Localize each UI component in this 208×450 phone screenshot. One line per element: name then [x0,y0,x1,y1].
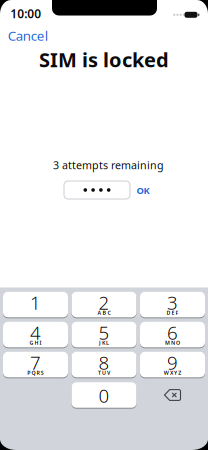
staticText: E [171,309,174,316]
staticText: Z [178,369,181,376]
staticText: U [102,369,106,376]
staticText: Cancel [8,27,48,44]
staticText: C [108,309,111,316]
button[interactable]: 4 [3,322,68,347]
staticText: F [176,309,179,316]
staticText: D [166,309,170,316]
staticText: 5 [98,320,109,345]
staticText: K [102,339,105,346]
button[interactable]: 9 [140,352,205,377]
button[interactable]: Cancel [8,27,48,44]
staticText: P [27,369,30,376]
staticText: 8 [98,350,109,375]
staticText: T [98,369,101,376]
staticText: J [99,339,101,346]
button[interactable]: OK [136,184,149,197]
staticText: 2 [98,290,109,315]
button[interactable]: 2 [71,292,136,317]
staticText: 4 [30,320,41,345]
button[interactable]: 0 [71,382,136,408]
staticText: 9 [167,350,178,375]
staticText: 3 [167,290,178,315]
button[interactable]: 6 [140,322,205,347]
staticText: M [165,339,170,346]
button[interactable]: 7 [3,352,68,377]
staticText: Q [31,369,35,376]
button[interactable]: 5 [71,322,136,347]
staticText: A [97,309,101,316]
staticText: N [171,339,175,346]
staticText: OK [136,184,149,197]
staticText: W [164,369,169,376]
button[interactable]: 8 [71,352,136,377]
staticText: 7 [30,350,41,375]
staticText: R [36,369,39,376]
staticText: X [170,369,173,376]
button[interactable]: 1 [3,292,68,317]
button[interactable]: PIN entry [64,181,130,199]
staticText: O [176,339,180,346]
button[interactable]: Delete [140,382,205,408]
staticText: I [40,339,42,346]
staticText: Y [174,369,177,376]
staticText: G [29,339,33,346]
staticText: V [107,369,110,376]
staticText: 10:00 [10,5,41,21]
staticText: B [102,309,106,316]
staticText: 3 attempts remaining [53,158,164,172]
staticText: SIM is locked [39,46,169,73]
staticText: 1 [30,290,41,315]
button[interactable]: 3 [140,292,205,317]
staticText: 6 [167,320,178,345]
staticText: L [106,339,109,346]
staticText: S [41,369,44,376]
staticText: H [34,339,38,346]
staticText: 0 [98,383,109,408]
